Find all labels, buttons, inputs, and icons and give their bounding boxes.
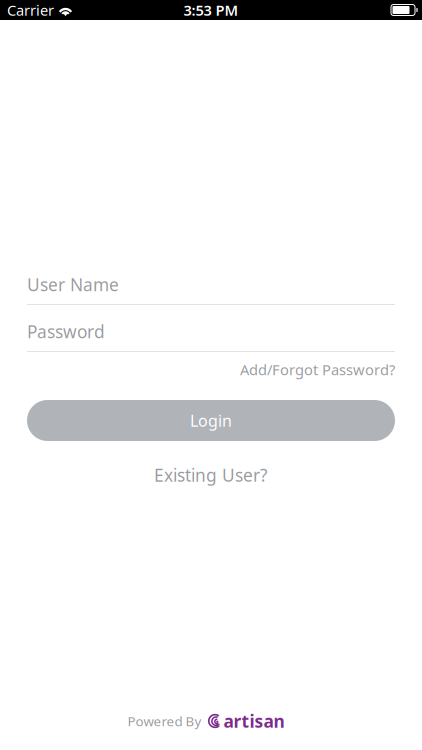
staticText: Powered By — [127, 712, 201, 730]
staticText: User Name — [27, 273, 119, 296]
button[interactable]: Add/Forgot Password? — [27, 360, 395, 379]
staticText: 3:53 PM — [183, 0, 238, 20]
staticText: Password — [27, 320, 105, 343]
staticText: Existing User? — [154, 463, 268, 486]
button[interactable]: Login — [27, 400, 395, 441]
staticText: Login — [190, 410, 232, 431]
staticText: artisan — [223, 709, 284, 732]
staticText: Carrier — [7, 0, 54, 20]
staticText: Add/Forgot Password? — [240, 360, 395, 379]
button[interactable]: Existing User? — [27, 465, 395, 485]
